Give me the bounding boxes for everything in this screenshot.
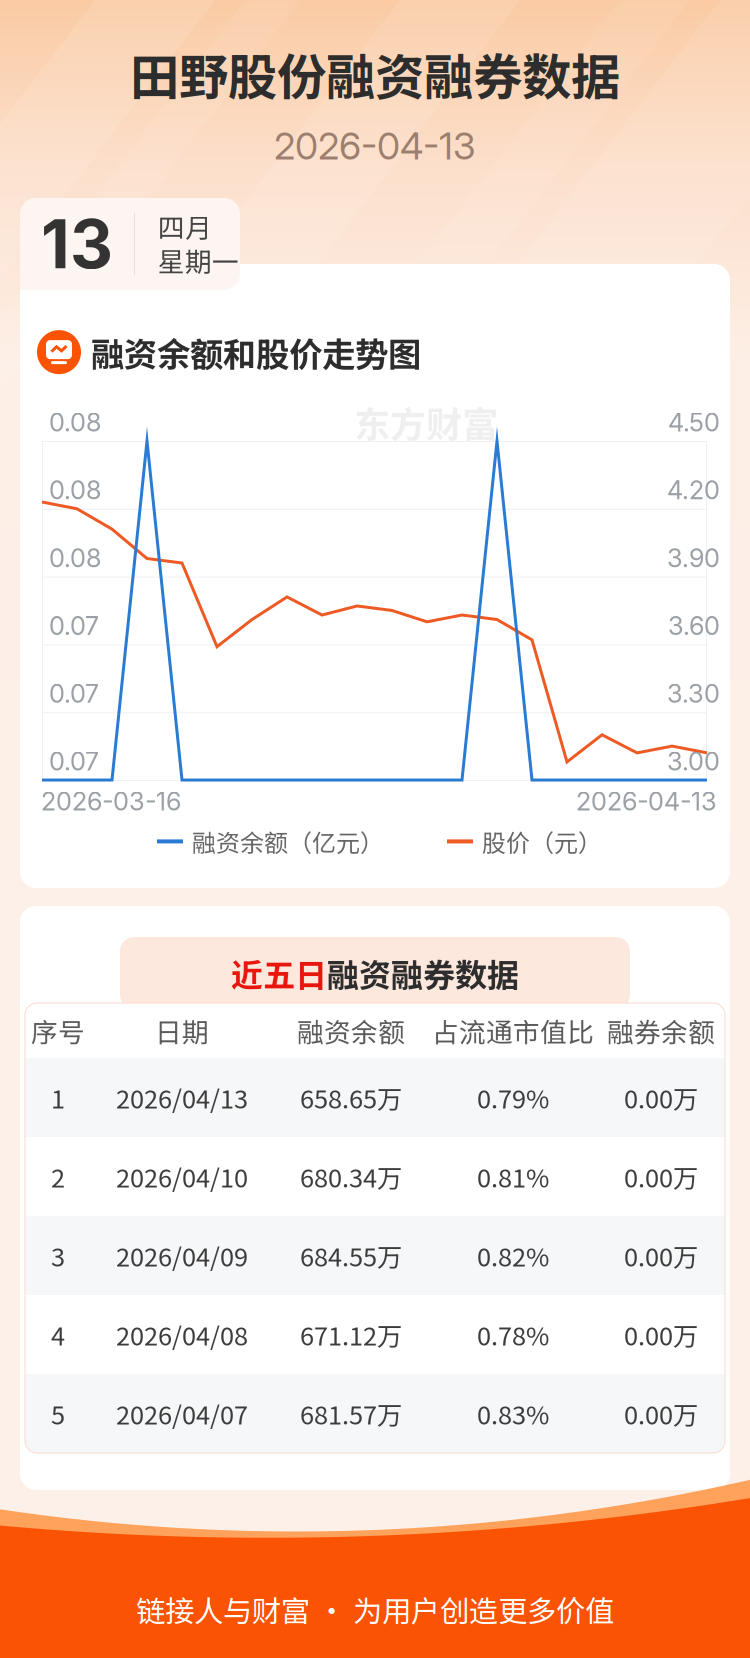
staticText: 田野股份融资融券数据 bbox=[130, 38, 620, 109]
staticText: 0.00万 bbox=[624, 1316, 698, 1353]
staticText: 链接人与财富 · 为用户创造更多价值 bbox=[136, 1588, 614, 1630]
staticText: 0.00万 bbox=[624, 1158, 698, 1195]
staticText: 671.12万 bbox=[300, 1316, 402, 1353]
staticText: 2026-03-16 bbox=[41, 786, 181, 817]
staticText: 13 bbox=[41, 204, 113, 284]
staticText: 占流通市值比 bbox=[432, 1011, 594, 1050]
staticText: 681.57万 bbox=[300, 1395, 402, 1432]
staticText: 3.60 bbox=[668, 610, 720, 641]
staticText: 星期一 bbox=[158, 241, 239, 279]
staticText: 2026/04/07 bbox=[116, 1395, 248, 1432]
staticText: 日期 bbox=[155, 1011, 209, 1050]
staticText: 2026/04/10 bbox=[116, 1158, 248, 1195]
staticText: 2026-04-13 bbox=[274, 123, 476, 169]
staticText: 融券余额 bbox=[607, 1011, 715, 1050]
staticText: 0.00万 bbox=[624, 1395, 698, 1432]
staticText: 0.08 bbox=[49, 543, 101, 573]
staticText: 2026-04-13 bbox=[576, 786, 717, 817]
staticText: 0.82% bbox=[477, 1237, 549, 1274]
staticText: 0.78% bbox=[477, 1316, 549, 1353]
staticText: 融资融券数据 bbox=[327, 950, 519, 996]
staticText: 3 bbox=[51, 1237, 65, 1274]
staticText: 658.65万 bbox=[300, 1079, 402, 1116]
staticText: 0.81% bbox=[477, 1158, 549, 1195]
staticText: 0.08 bbox=[49, 475, 101, 505]
staticText: 近五日 bbox=[231, 950, 327, 996]
staticText: 0.08 bbox=[49, 407, 101, 438]
staticText: 2026/04/13 bbox=[116, 1079, 248, 1116]
staticText: 0.00万 bbox=[624, 1237, 698, 1274]
staticText: 2026/04/08 bbox=[116, 1316, 248, 1353]
staticText: 2 bbox=[51, 1158, 65, 1195]
staticText: 684.55万 bbox=[300, 1237, 402, 1274]
staticText: 3.00 bbox=[667, 746, 720, 777]
staticText: 3.30 bbox=[667, 678, 720, 709]
staticText: 融资余额 bbox=[297, 1011, 405, 1050]
staticText: 5 bbox=[51, 1395, 65, 1432]
staticText: 0.83% bbox=[477, 1395, 549, 1432]
staticText: 4.50 bbox=[668, 407, 720, 438]
staticText: 四月 bbox=[158, 207, 212, 245]
staticText: 2026/04/09 bbox=[116, 1237, 248, 1274]
staticText: 4 bbox=[51, 1316, 65, 1353]
staticText: 融资余额和股价走势图 bbox=[91, 328, 421, 376]
staticText: 0.79% bbox=[477, 1079, 549, 1116]
staticText: 股价（元） bbox=[482, 824, 602, 859]
staticText: 1 bbox=[51, 1079, 65, 1116]
staticText: 680.34万 bbox=[300, 1158, 402, 1195]
staticText: 融资余额（亿元） bbox=[192, 824, 384, 859]
staticText: 0.07 bbox=[49, 610, 99, 641]
staticText: 0.07 bbox=[49, 678, 99, 709]
staticText: 3.90 bbox=[667, 543, 720, 573]
staticText: 4.20 bbox=[667, 475, 720, 505]
staticText: 0.00万 bbox=[624, 1079, 698, 1116]
staticText: 序号 bbox=[31, 1011, 85, 1050]
staticText: 0.07 bbox=[49, 746, 99, 777]
staticText: 东方财富 bbox=[354, 396, 498, 448]
